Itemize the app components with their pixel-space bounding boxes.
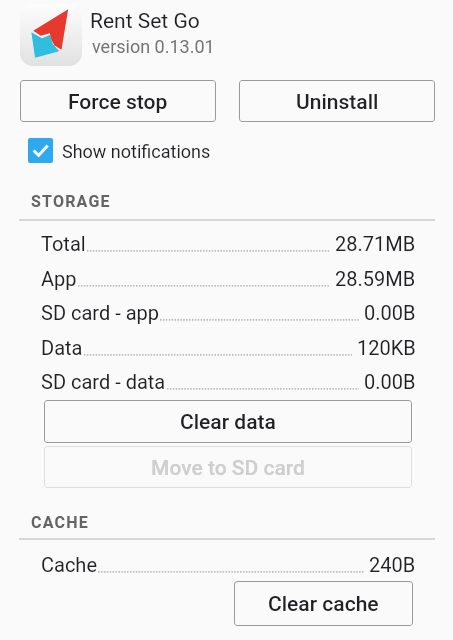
staticText: Force stop: [68, 90, 168, 115]
button: Move to SD card: [44, 446, 412, 488]
button[interactable]: Show notifications: [24, 133, 211, 167]
staticText: Data: [41, 336, 83, 359]
staticText: STORAGE: [31, 192, 111, 211]
button[interactable]: Uninstall: [239, 80, 435, 122]
staticText: 28.71MB: [335, 232, 416, 255]
staticText: Move to SD card: [151, 456, 305, 481]
staticText: version 0.13.01: [92, 36, 215, 57]
staticText: Rent Set Go: [90, 9, 200, 34]
staticText: Clear data: [180, 410, 276, 435]
button[interactable]: Force stop: [20, 80, 216, 122]
staticText: 120KB: [357, 336, 416, 359]
staticText: App: [41, 267, 77, 290]
staticText: 0.00B: [364, 301, 416, 324]
staticText: SD card - data: [41, 370, 166, 393]
button[interactable]: Clear data: [44, 400, 412, 443]
staticText: Total: [41, 232, 86, 255]
staticText: 28.59MB: [335, 267, 416, 290]
staticText: Cache: [41, 553, 97, 576]
staticText: CACHE: [31, 513, 89, 532]
staticText: Clear cache: [268, 592, 379, 617]
staticText: Show notifications: [62, 141, 211, 162]
staticText: 240B: [369, 553, 416, 576]
staticText: 0.00B: [364, 370, 416, 393]
staticText: SD card - app: [41, 301, 159, 324]
staticText: Uninstall: [296, 90, 379, 115]
button[interactable]: Clear cache: [234, 581, 413, 626]
